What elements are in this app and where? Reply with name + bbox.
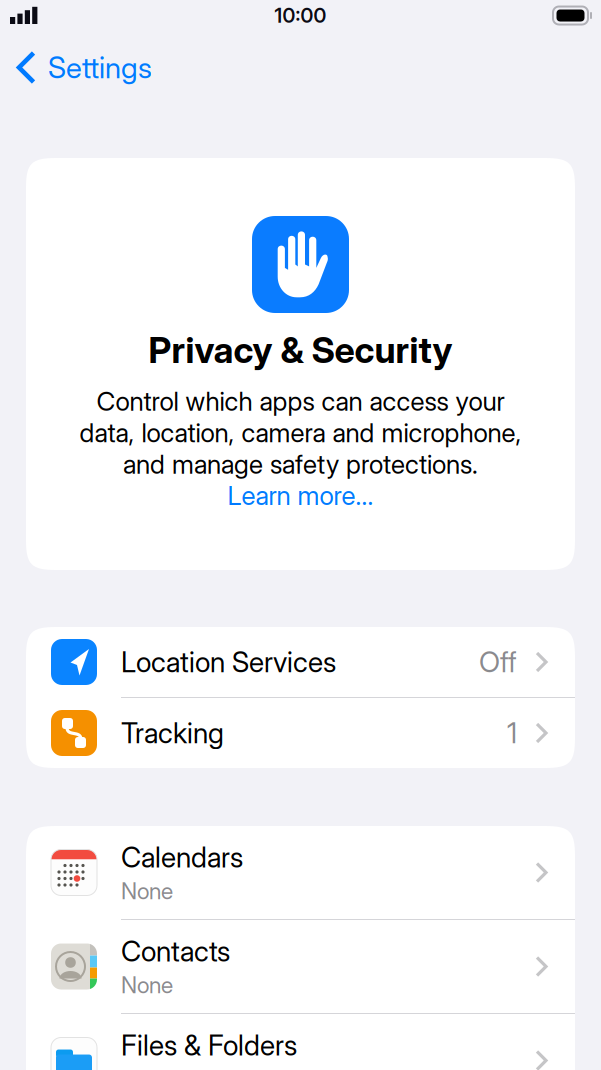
staticText: Off (479, 645, 517, 679)
staticText: Location Services (121, 645, 336, 679)
button[interactable]: Location Services (26, 627, 575, 697)
staticText: Contacts (121, 934, 230, 968)
button[interactable]: Files & Folders (26, 1014, 575, 1070)
staticText: Control which apps can access your (96, 386, 504, 417)
staticText: Calendars (121, 840, 243, 874)
staticText: Settings (48, 50, 152, 85)
staticText: Privacy & Security (148, 328, 452, 372)
button[interactable]: Learn more... (227, 480, 373, 511)
button[interactable]: Settings (0, 34, 152, 91)
staticText: Tracking (121, 716, 224, 750)
staticText: Files & Folders (121, 1028, 297, 1062)
button[interactable]: Contacts (26, 920, 575, 1013)
staticText: 10:00 (274, 3, 326, 28)
staticText: data, location, camera and microphone, (79, 417, 521, 448)
button[interactable]: Calendars (26, 826, 575, 919)
staticText: None (121, 971, 173, 999)
button[interactable]: Tracking (26, 698, 575, 768)
staticText: None (121, 877, 173, 905)
staticText: Learn more... (227, 480, 373, 511)
staticText: 1 (507, 716, 517, 750)
staticText: and manage safety protections. (123, 448, 478, 480)
